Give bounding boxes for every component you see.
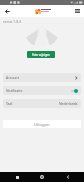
button[interactable]: Account — [3, 73, 81, 82]
button[interactable]: Taal — [3, 99, 81, 108]
staticText: Notificatie — [6, 88, 23, 93]
button[interactable]: Back — [59, 172, 77, 182]
staticText: Taal — [6, 101, 13, 106]
button[interactable]: Uitloggen — [3, 120, 81, 128]
staticText: Uitloggen — [34, 122, 50, 127]
button[interactable]: Recents — [8, 172, 26, 182]
button[interactable]: Notificatie — [3, 86, 81, 95]
staticText: versie 1.8.4 — [3, 19, 21, 24]
staticText: Account — [6, 75, 19, 80]
button[interactable]: Back — [2, 5, 12, 17]
button[interactable]: Foto wijzigen — [27, 51, 55, 58]
staticText: Nederlands — [59, 101, 78, 106]
staticText: Foto wijzigen — [32, 53, 50, 57]
button[interactable]: Home — [33, 172, 51, 182]
button[interactable]: Menu — [72, 5, 82, 17]
